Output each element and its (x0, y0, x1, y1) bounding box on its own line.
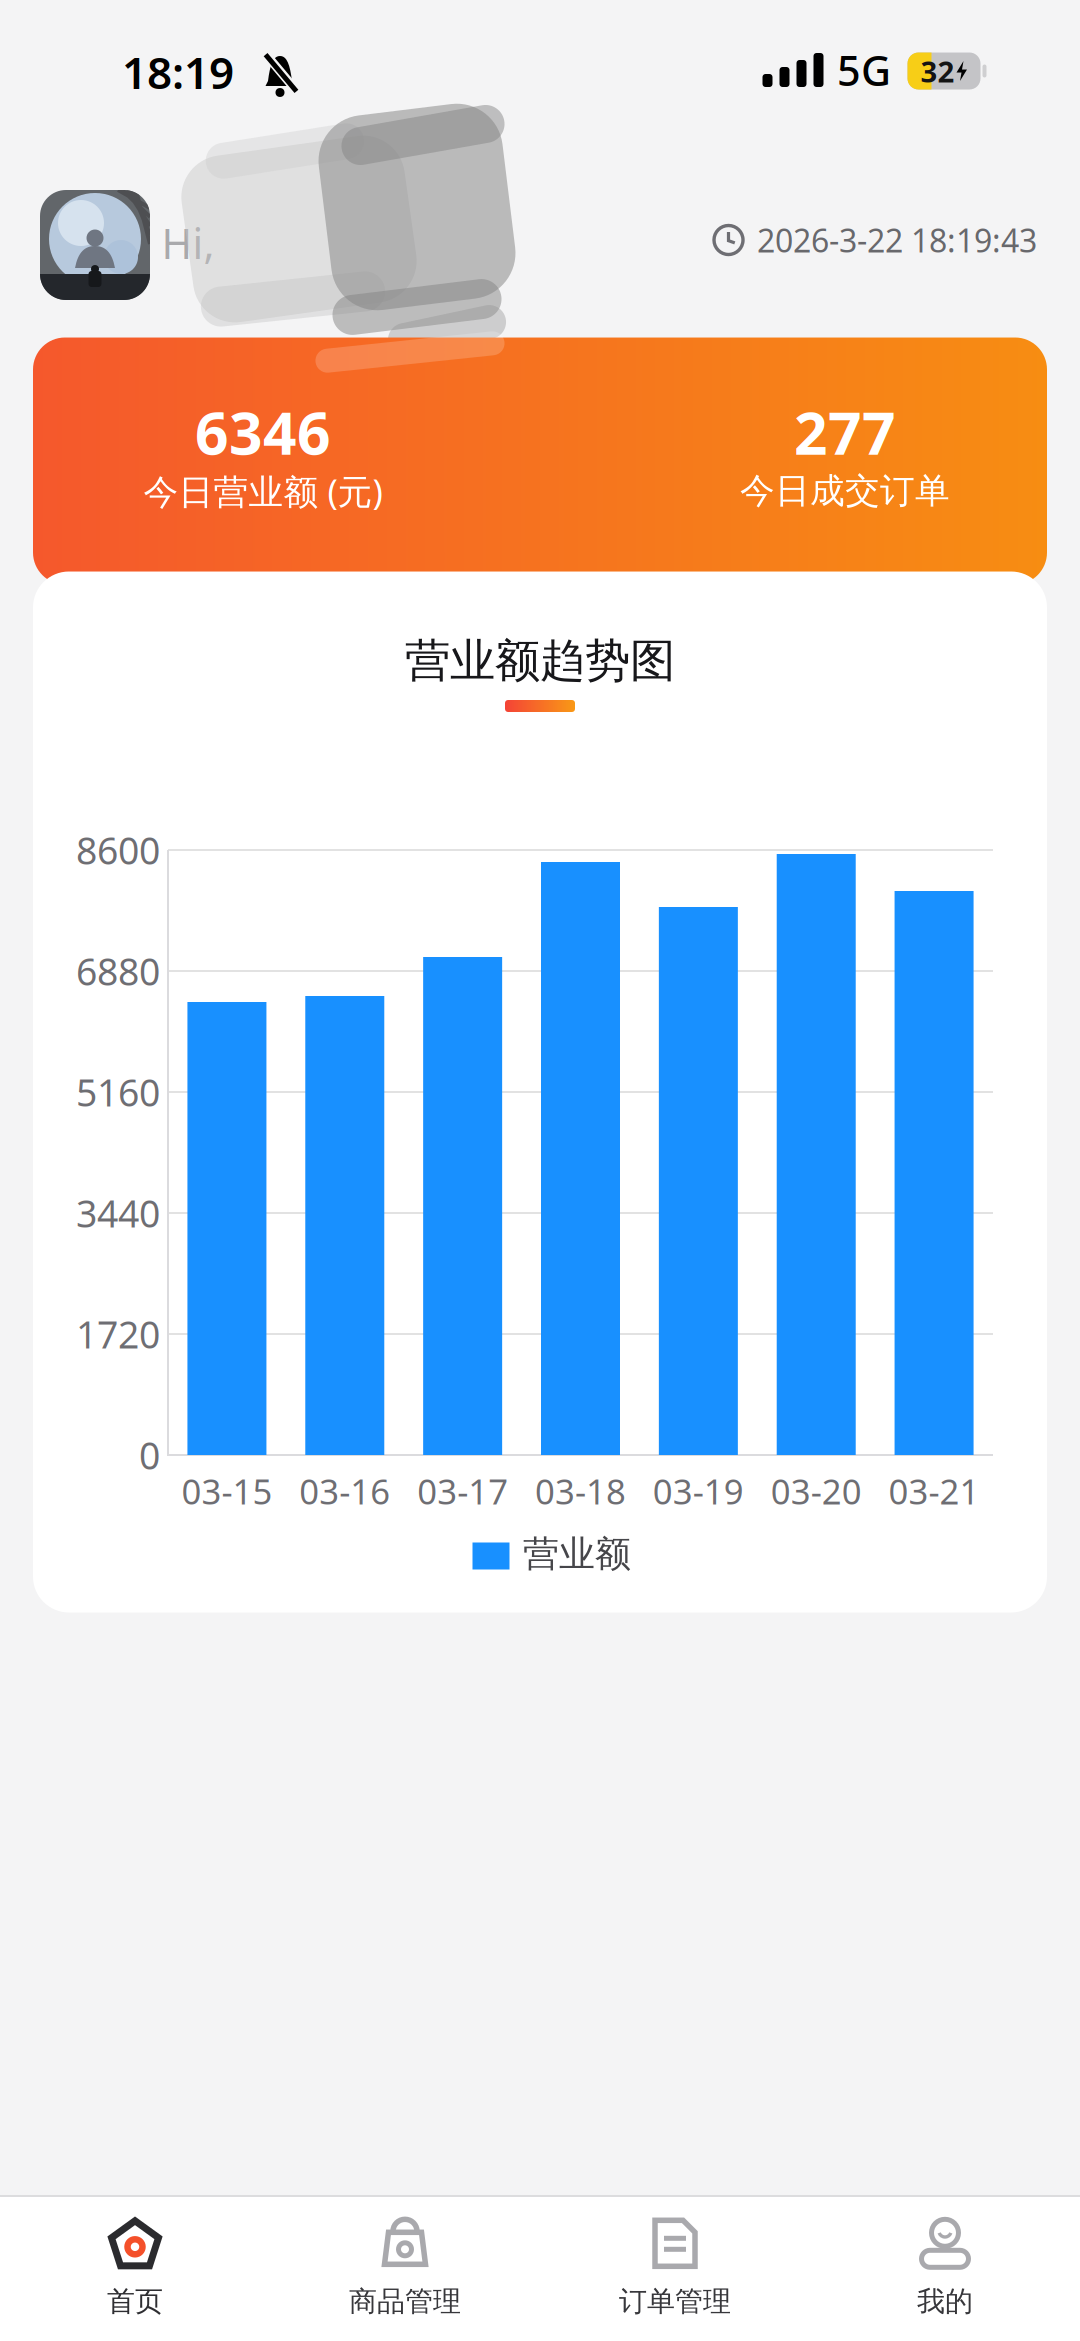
staticText: 6346 (195, 393, 331, 471)
staticText: 03-18 (535, 1468, 626, 1514)
button[interactable]: 我的 (810, 2198, 1080, 2338)
staticText: 首页 (107, 2284, 163, 2319)
button[interactable]: 首页 (0, 2198, 270, 2338)
staticText: 2026-3-22 18:19:43 (757, 219, 1037, 261)
staticText: Hi, (161, 216, 214, 270)
staticText: 商品管理 (349, 2284, 461, 2319)
staticText: 今日成交订单 (740, 470, 950, 512)
staticText: 03-19 (653, 1468, 744, 1514)
staticText: 订单管理 (619, 2284, 731, 2319)
staticText: 5G (837, 43, 891, 97)
button[interactable] (40, 190, 150, 300)
staticText: 18:19 (122, 43, 234, 101)
staticText: 营业额 (523, 1532, 631, 1576)
staticText: 6880 (76, 946, 160, 996)
staticText: 1720 (76, 1309, 160, 1359)
staticText: 我的 (917, 2284, 973, 2319)
staticText: 03-20 (771, 1468, 862, 1514)
staticText: 03-15 (181, 1468, 272, 1514)
staticText: 03-16 (299, 1468, 390, 1514)
button[interactable]: 订单管理 (540, 2198, 810, 2338)
staticText: 今日营业额 (元) (143, 468, 382, 514)
staticText: 277 (794, 393, 896, 471)
staticText: 32 (920, 51, 954, 90)
staticText: 营业额趋势图 (405, 633, 675, 689)
staticText: 5160 (76, 1067, 160, 1117)
staticText: 03-21 (889, 1468, 980, 1514)
staticText: 8600 (76, 825, 160, 875)
button[interactable]: 商品管理 (270, 2198, 540, 2338)
staticText: 03-17 (417, 1468, 508, 1514)
staticText: 3440 (76, 1188, 160, 1238)
staticText: 0 (139, 1430, 160, 1480)
